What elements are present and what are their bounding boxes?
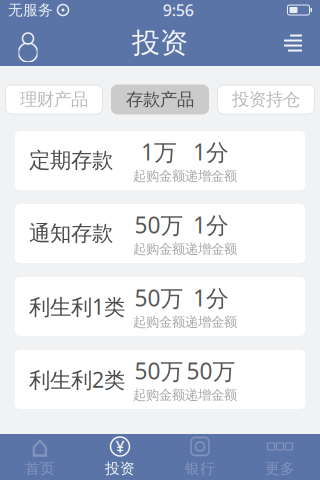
button[interactable]: 理财产品 xyxy=(5,85,102,114)
button[interactable]: 定期存款 xyxy=(15,131,305,190)
staticText: 存款产品 xyxy=(126,89,194,110)
staticText: 递增金额 xyxy=(185,168,237,184)
button[interactable]: 存款产品 xyxy=(111,85,208,114)
staticText: 递增金额 xyxy=(185,314,237,330)
staticText: 投资 xyxy=(105,459,135,477)
staticText: 投资持仓 xyxy=(232,89,300,110)
staticText: 投资 xyxy=(132,26,188,60)
staticText: 1分 xyxy=(193,137,229,167)
staticText: 50万 xyxy=(134,283,183,313)
staticText: 起购金额 xyxy=(133,168,185,184)
staticText: 1分 xyxy=(193,210,229,240)
button[interactable]: 更多 xyxy=(240,434,320,480)
staticText: 50万 xyxy=(134,356,183,386)
staticText: 银行 xyxy=(185,459,215,477)
button[interactable]: 利生利2类 xyxy=(15,350,305,409)
staticText: ⌂ xyxy=(30,430,49,463)
button[interactable]: 投资持仓 xyxy=(217,85,314,114)
button[interactable]: 通知存款 xyxy=(15,204,305,263)
button[interactable]: 账户 xyxy=(6,21,50,65)
button[interactable]: 菜单 xyxy=(270,21,314,65)
staticText: 更多 xyxy=(265,459,295,477)
staticText: 起购金额 xyxy=(133,314,185,330)
staticText: 利生利1类 xyxy=(29,292,125,321)
staticText: 50万 xyxy=(186,356,235,386)
staticText: 理财产品 xyxy=(20,89,88,110)
staticText: 定期存款 xyxy=(29,147,113,174)
staticText: 9:56 xyxy=(163,0,194,21)
staticText: ¥ xyxy=(115,436,124,457)
staticText: 递增金额 xyxy=(185,241,237,257)
button[interactable]: ⌂ xyxy=(0,434,80,480)
staticText: 通知存款 xyxy=(29,220,113,247)
staticText: 1万 xyxy=(141,137,177,167)
staticText: 起购金额 xyxy=(133,387,185,403)
button[interactable]: 银行 xyxy=(160,434,240,480)
staticText: 50万 xyxy=(134,210,183,240)
staticText: 起购金额 xyxy=(133,241,185,257)
staticText: 无服务 xyxy=(8,1,53,19)
button[interactable]: 利生利1类 xyxy=(15,277,305,336)
staticText: 递增金额 xyxy=(185,387,237,403)
staticText: 利生利2类 xyxy=(29,365,125,394)
staticText: 首页 xyxy=(25,459,55,477)
button[interactable]: ¥ xyxy=(80,434,160,480)
staticText: 1分 xyxy=(193,283,229,313)
